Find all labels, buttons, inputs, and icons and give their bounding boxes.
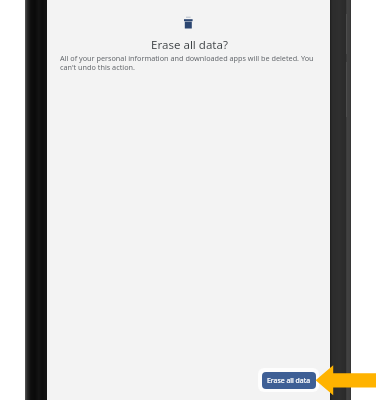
- staticText: Erase all data?: [48, 37, 331, 53]
- staticText: Erase all data: [267, 376, 311, 385]
- other: Pointer arrow: [0, 0, 385, 400]
- button[interactable]: Erase all data: [262, 372, 316, 389]
- button[interactable]: Erase all data: [258, 368, 319, 392]
- other: Delete: [47, 16, 330, 29]
- staticText: All of your personal information and dow…: [60, 53, 317, 72]
